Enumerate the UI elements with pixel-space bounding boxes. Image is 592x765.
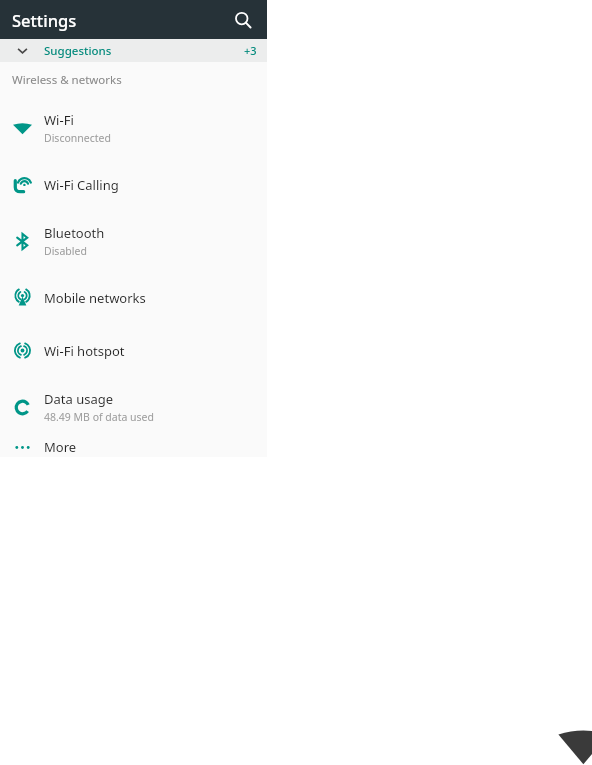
staticText: Disabled: [44, 244, 87, 258]
button[interactable]: More: [0, 437, 267, 457]
button[interactable]: Search: [227, 4, 259, 36]
button[interactable]: Wi-Fi Calling: [0, 158, 267, 211]
staticText: +3: [244, 43, 257, 58]
button[interactable]: Mobile networks: [0, 271, 267, 324]
staticText: Bluetooth: [44, 224, 105, 242]
staticText: 48.49 MB of data used: [44, 410, 154, 424]
staticText: Wi-Fi: [44, 111, 74, 129]
staticText: Wireless & networks: [12, 72, 122, 88]
staticText: Mobile networks: [44, 289, 146, 307]
staticText: Data usage: [44, 390, 114, 408]
staticText: Suggestions: [44, 43, 112, 59]
staticText: Settings: [12, 9, 77, 31]
staticText: Disconnected: [44, 131, 111, 145]
button[interactable]: Wi-Fi: [0, 98, 267, 158]
staticText: Wi-Fi hotspot: [44, 342, 125, 360]
button[interactable]: Bluetooth: [0, 211, 267, 271]
staticText: Wi-Fi Calling: [44, 176, 119, 194]
button[interactable]: Data usage: [0, 377, 267, 437]
button[interactable]: Suggestions: [0, 39, 267, 62]
button[interactable]: Wi-Fi hotspot: [0, 324, 267, 377]
staticText: More: [44, 438, 77, 456]
